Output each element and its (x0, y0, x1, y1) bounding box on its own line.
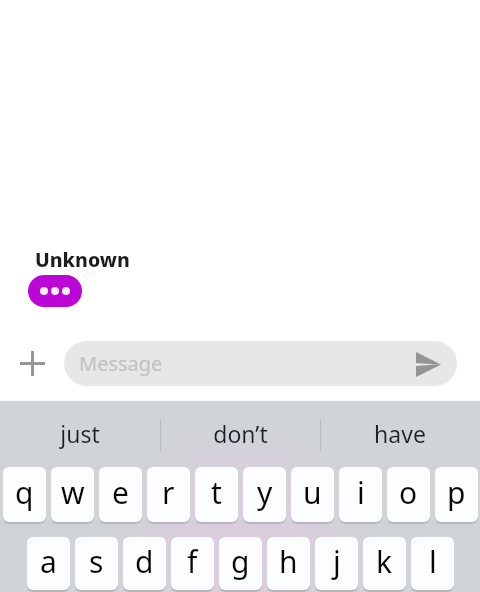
button[interactable]: h (267, 537, 310, 590)
button[interactable]: have (320, 401, 480, 467)
staticText: just (60, 418, 100, 449)
staticText: y (257, 472, 273, 513)
button[interactable]: o (387, 467, 430, 522)
button[interactable]: d (123, 537, 166, 590)
staticText: j (333, 541, 341, 582)
staticText: s (89, 541, 104, 582)
button[interactable]: Message (64, 341, 457, 386)
staticText: Message (79, 350, 163, 377)
button[interactable]: a (27, 537, 70, 590)
staticText: q (15, 472, 34, 513)
staticText: k (376, 541, 393, 582)
button[interactable]: p (435, 467, 478, 522)
button[interactable]: y (243, 467, 286, 522)
button[interactable] (28, 275, 82, 307)
staticText: Unknown (35, 246, 130, 273)
button[interactable]: Add attachment (0, 341, 64, 386)
staticText: l (429, 541, 437, 582)
button[interactable]: i (339, 467, 382, 522)
staticText: r (162, 472, 175, 513)
staticText: don’t (213, 418, 268, 449)
button[interactable]: q (3, 467, 46, 522)
button[interactable]: Send (413, 349, 443, 379)
button[interactable]: s (75, 537, 118, 590)
button[interactable]: t (195, 467, 238, 522)
staticText: h (279, 541, 298, 582)
button[interactable]: l (411, 537, 454, 590)
staticText: d (135, 541, 154, 582)
staticText: have (374, 418, 426, 449)
button[interactable]: e (99, 467, 142, 522)
staticText: p (447, 472, 466, 513)
staticText: e (112, 472, 129, 513)
staticText: w (61, 472, 85, 513)
staticText: g (231, 541, 250, 582)
button[interactable]: r (147, 467, 190, 522)
button[interactable]: f (171, 537, 214, 590)
staticText: f (187, 541, 198, 582)
button[interactable]: w (51, 467, 94, 522)
button[interactable]: k (363, 537, 406, 590)
staticText: t (211, 472, 222, 513)
button[interactable]: g (219, 537, 262, 590)
staticText: o (399, 472, 418, 513)
button[interactable]: don’t (160, 401, 320, 467)
button[interactable]: j (315, 537, 358, 590)
button[interactable]: just (0, 401, 160, 467)
staticText: u (303, 472, 322, 513)
button[interactable]: u (291, 467, 334, 522)
staticText: a (40, 541, 57, 582)
staticText: i (357, 472, 365, 513)
